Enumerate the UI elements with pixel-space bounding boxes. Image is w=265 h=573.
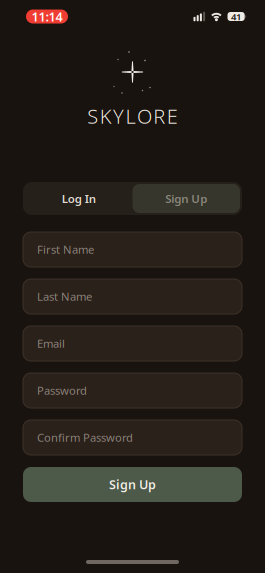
staticText: E — [167, 102, 178, 130]
staticText: K — [100, 102, 112, 130]
button[interactable]: Sign Up — [23, 467, 242, 502]
button[interactable]: Log In — [25, 184, 132, 213]
staticText: R — [153, 102, 165, 130]
button[interactable]: Password — [23, 373, 242, 408]
staticText: Sign Up — [109, 476, 156, 493]
staticText: L — [125, 102, 135, 130]
staticText: O — [137, 102, 152, 130]
staticText: Y — [113, 102, 124, 130]
button[interactable]: Last Name — [23, 279, 242, 314]
staticText: Confirm Password — [37, 430, 133, 445]
button[interactable]: First Name — [23, 232, 242, 267]
staticText: S — [87, 102, 98, 130]
staticText: 41 — [231, 10, 241, 23]
staticText: Sign Up — [165, 191, 207, 206]
staticText: 11:14 — [31, 8, 62, 25]
staticText: Password — [37, 383, 87, 398]
staticText: First Name — [37, 242, 94, 257]
staticText: Last Name — [37, 289, 92, 304]
button[interactable]: Confirm Password — [23, 420, 242, 455]
button[interactable]: Email — [23, 326, 242, 361]
staticText: Email — [37, 336, 65, 351]
button[interactable]: Sign Up — [132, 184, 240, 213]
staticText: Log In — [62, 191, 96, 206]
